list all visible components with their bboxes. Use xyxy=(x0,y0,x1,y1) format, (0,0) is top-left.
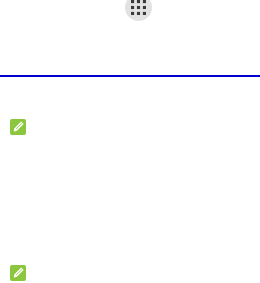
button[interactable]: Apps xyxy=(125,0,152,21)
button[interactable]: Edit xyxy=(10,265,26,281)
button[interactable]: Edit xyxy=(10,119,26,135)
